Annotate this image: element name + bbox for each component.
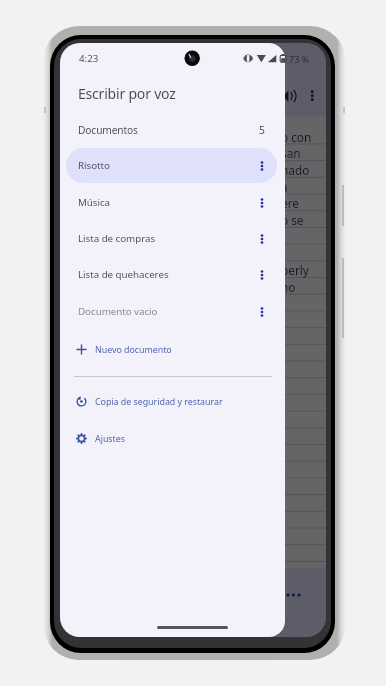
staticText: Lista de compras <box>78 232 156 245</box>
button[interactable]: Música <box>66 185 277 220</box>
staticText: Nuevo documento <box>95 343 172 355</box>
staticText: 5 <box>259 123 265 137</box>
staticText: Música <box>78 196 111 209</box>
staticText: Documentos <box>78 123 138 137</box>
button[interactable]: Documento vacio <box>66 294 277 329</box>
staticText: Copia de seguridad y restaurar <box>95 395 223 407</box>
button[interactable]: Más opciones <box>255 268 269 282</box>
staticText: 73 % <box>289 53 310 65</box>
button[interactable]: Más opciones <box>255 196 269 210</box>
button[interactable]: Risotto <box>66 148 277 183</box>
staticText: no <box>281 279 296 295</box>
staticText: Lista de quehaceres <box>78 268 169 281</box>
button[interactable]: Ajustes <box>60 423 285 453</box>
button[interactable]: Más opciones <box>255 159 269 173</box>
staticText: Documento vacio <box>78 305 158 318</box>
button[interactable]: Lista de quehaceres <box>66 257 277 292</box>
button[interactable]: Más opciones <box>255 232 269 246</box>
staticText: ere <box>281 195 299 211</box>
staticText: Ajustes <box>95 432 125 444</box>
staticText: o se <box>281 212 304 228</box>
staticText: nado <box>281 162 310 178</box>
button[interactable]: Lista de compras <box>66 221 277 256</box>
staticText: perly <box>281 262 309 278</box>
staticText: Risotto <box>78 159 110 172</box>
staticText: 4:23 <box>79 52 99 65</box>
button[interactable]: Nuevo documento <box>60 334 285 364</box>
staticText: a <box>281 179 288 195</box>
staticText: san <box>281 145 301 161</box>
staticText: o con <box>281 129 312 145</box>
button[interactable]: Copia de seguridad y restaurar <box>60 386 285 416</box>
staticText: Escribir por voz <box>78 84 176 103</box>
button[interactable]: Más opciones <box>255 305 269 319</box>
